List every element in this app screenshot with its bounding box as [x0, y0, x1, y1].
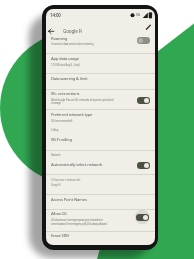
staticText: Allow Google Fi to use W+ networks to im… — [51, 98, 114, 102]
staticText: 5G — [136, 12, 141, 17]
staticText: Erase SIM — [51, 233, 69, 239]
staticText: coverage — [51, 101, 61, 105]
staticText: 5G (recommended) — [51, 119, 73, 123]
staticText: Google Fi — [63, 28, 82, 34]
staticText: Automatically select network — [51, 162, 102, 168]
staticText: some locations. For emergency calls, 2G … — [51, 222, 108, 226]
staticText: App data usage — [51, 56, 79, 62]
staticText: W+ connections — [51, 91, 80, 97]
staticText: Google Fi — [51, 183, 61, 187]
staticText: Choose network — [51, 177, 81, 183]
staticText: Preferred network type — [51, 112, 93, 118]
staticText: Allow 2G — [51, 211, 67, 217]
staticText: Network — [51, 153, 61, 157]
staticText: 1.03 GB used Aug 9 – Sep 6 — [51, 63, 80, 67]
staticText: 14:00 — [50, 12, 61, 18]
staticText: Access Point Names — [51, 197, 87, 203]
staticText: 2G is less secure, but may improve your … — [51, 218, 103, 222]
staticText: Calling — [51, 128, 59, 132]
staticText: Wi-Fi calling — [51, 137, 72, 143]
staticText: Data warning & limit — [51, 76, 88, 82]
staticText: Roaming — [51, 36, 68, 42]
staticText: Connect to data services when roaming — [51, 42, 94, 46]
